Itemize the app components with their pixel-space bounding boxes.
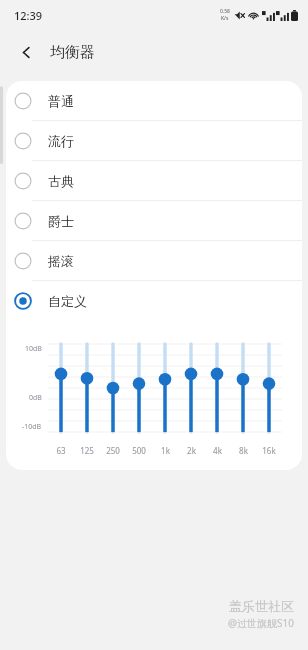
button[interactable]: 摇滚	[6, 241, 302, 280]
staticText: 12:39	[14, 8, 43, 23]
staticText: 125	[80, 445, 94, 456]
staticText: 1k	[161, 445, 170, 456]
button[interactable]: 流行	[6, 121, 302, 160]
staticText: 自定义	[48, 293, 87, 309]
staticText: -10dB	[22, 422, 42, 432]
button[interactable]: 普通	[6, 81, 302, 120]
staticText: 0dB	[29, 393, 42, 403]
staticText: 250	[106, 445, 120, 456]
staticText: 爵士	[48, 213, 74, 229]
staticText: 16k	[262, 445, 276, 456]
staticText: 盖乐世社区	[229, 598, 294, 614]
button[interactable]: Back	[10, 36, 42, 68]
button[interactable]: 爵士	[6, 201, 302, 240]
staticText: 10dB	[25, 344, 42, 354]
staticText: 均衡器	[50, 43, 95, 62]
staticText: 63	[56, 445, 66, 456]
staticText: 500	[132, 445, 146, 456]
staticText: 2k	[187, 445, 196, 456]
staticText: 普通	[48, 93, 74, 109]
staticText: 摇滚	[48, 253, 74, 269]
staticText: K/s	[221, 15, 229, 22]
staticText: 流行	[48, 133, 74, 149]
staticText: @过世旗舰S10	[228, 616, 294, 630]
staticText: 古典	[48, 173, 74, 189]
staticText: 4k	[213, 445, 222, 456]
button[interactable]: 古典	[6, 161, 302, 200]
button[interactable]: 自定义	[6, 281, 302, 320]
staticText: 0.58	[220, 8, 230, 15]
staticText: 8k	[239, 445, 248, 456]
